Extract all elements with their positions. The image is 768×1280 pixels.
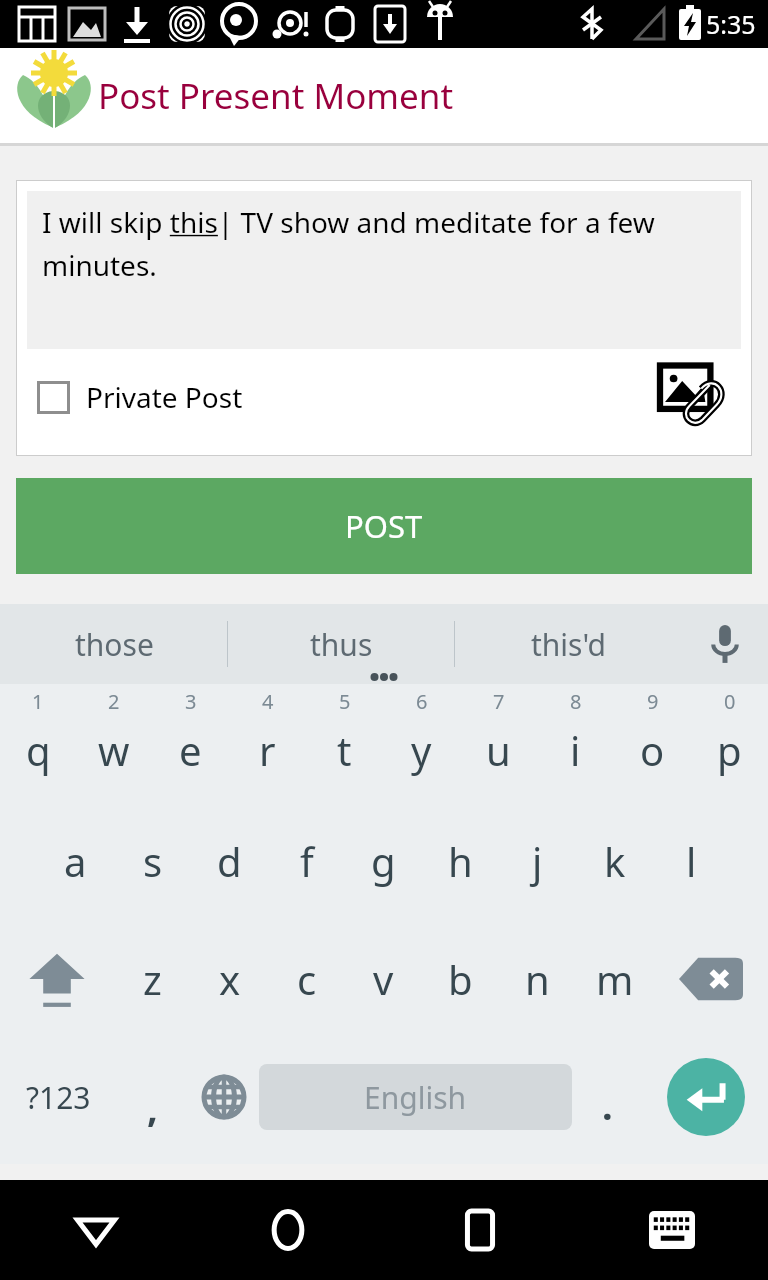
- staticText: k: [604, 834, 626, 888]
- button[interactable]: Attach image: [653, 355, 737, 439]
- staticText: 1: [32, 688, 44, 715]
- staticText: n: [525, 952, 550, 1006]
- button[interactable]: b: [422, 920, 499, 1038]
- button[interactable]: 5: [306, 684, 383, 802]
- button[interactable]: Recents: [384, 1180, 576, 1280]
- button[interactable]: v: [345, 920, 422, 1038]
- staticText: ,: [147, 1081, 158, 1133]
- button[interactable]: j: [499, 802, 576, 920]
- button[interactable]: h: [422, 802, 499, 920]
- staticText: b: [448, 952, 473, 1006]
- button[interactable]: l: [653, 802, 730, 920]
- button[interactable]: g: [345, 802, 422, 920]
- staticText: d: [217, 834, 242, 888]
- button[interactable]: 4: [229, 684, 306, 802]
- staticText: POST: [345, 505, 423, 547]
- staticText: 4: [262, 688, 274, 715]
- button[interactable]: Back: [0, 1180, 192, 1280]
- staticText: s: [143, 834, 163, 888]
- button[interactable]: d: [191, 802, 268, 920]
- button[interactable]: x: [191, 920, 268, 1038]
- staticText: j: [532, 834, 543, 888]
- button[interactable]: Voice input: [682, 604, 768, 684]
- staticText: u: [486, 723, 511, 777]
- staticText: 9: [647, 688, 659, 715]
- staticText: l: [686, 834, 697, 888]
- staticText: g: [371, 834, 396, 888]
- staticText: ?123: [26, 1077, 91, 1118]
- staticText: h: [448, 834, 473, 888]
- button[interactable]: 1: [0, 684, 76, 802]
- staticText: w: [98, 723, 130, 777]
- button[interactable]: 3: [152, 684, 229, 802]
- button[interactable]: Change language: [188, 1038, 259, 1156]
- button[interactable]: f: [268, 802, 345, 920]
- staticText: 8: [570, 688, 582, 715]
- button[interactable]: 2: [76, 684, 152, 802]
- staticText: r: [259, 723, 276, 777]
- staticText: Post Present Moment: [98, 72, 454, 120]
- button[interactable]: c: [268, 920, 345, 1038]
- button[interactable]: Hide keyboard: [576, 1180, 768, 1280]
- button[interactable]: a: [37, 802, 114, 920]
- staticText: f: [300, 834, 314, 888]
- staticText: 0: [724, 688, 736, 715]
- button[interactable]: English: [259, 1064, 572, 1130]
- staticText: q: [26, 723, 51, 777]
- button[interactable]: this'd: [455, 604, 682, 684]
- button[interactable]: POST: [16, 478, 752, 574]
- button[interactable]: .: [572, 1038, 643, 1156]
- button[interactable]: Shift: [0, 920, 114, 1038]
- button[interactable]: ,: [117, 1038, 188, 1156]
- button[interactable]: I will skip this| TV show and meditate f…: [27, 191, 741, 349]
- staticText: .: [602, 1079, 613, 1131]
- staticText: 5: [339, 688, 351, 715]
- staticText: 7: [493, 688, 505, 715]
- staticText: p: [717, 723, 742, 777]
- staticText: x: [219, 952, 241, 1006]
- button[interactable]: Home: [192, 1180, 384, 1280]
- staticText: i: [570, 723, 581, 777]
- staticText: t: [337, 723, 352, 777]
- staticText: o: [640, 723, 665, 777]
- staticText: v: [373, 952, 394, 1006]
- button[interactable]: 6: [383, 684, 460, 802]
- staticText: English: [364, 1077, 467, 1118]
- button[interactable]: those: [0, 604, 228, 684]
- staticText: 5:35: [706, 7, 756, 41]
- staticText: y: [411, 723, 432, 777]
- staticText: 3: [185, 688, 197, 715]
- staticText: those: [75, 624, 154, 665]
- staticText: 2: [108, 688, 120, 715]
- button[interactable]: ?123: [0, 1038, 117, 1156]
- button[interactable]: 0: [691, 684, 768, 802]
- button[interactable]: 8: [537, 684, 614, 802]
- button[interactable]: m: [576, 920, 653, 1038]
- button[interactable]: s: [114, 802, 191, 920]
- staticText: e: [179, 723, 202, 777]
- staticText: a: [64, 834, 87, 888]
- button[interactable]: 7: [460, 684, 537, 802]
- button[interactable]: thus: [228, 604, 455, 684]
- staticText: z: [143, 952, 162, 1006]
- staticText: m: [596, 952, 634, 1006]
- staticText: c: [297, 952, 317, 1006]
- button[interactable]: n: [499, 920, 576, 1038]
- button[interactable]: Private Post: [27, 368, 253, 426]
- staticText: Private Post: [86, 378, 243, 416]
- staticText: 6: [416, 688, 428, 715]
- staticText: this'd: [531, 624, 606, 665]
- button[interactable]: 9: [614, 684, 691, 802]
- button[interactable]: z: [114, 920, 191, 1038]
- button[interactable]: Backspace: [653, 920, 768, 1038]
- button[interactable]: k: [576, 802, 653, 920]
- button[interactable]: Enter: [643, 1038, 768, 1156]
- staticText: thus: [310, 624, 373, 665]
- staticText: I will skip this| TV show and meditate f…: [42, 203, 731, 284]
